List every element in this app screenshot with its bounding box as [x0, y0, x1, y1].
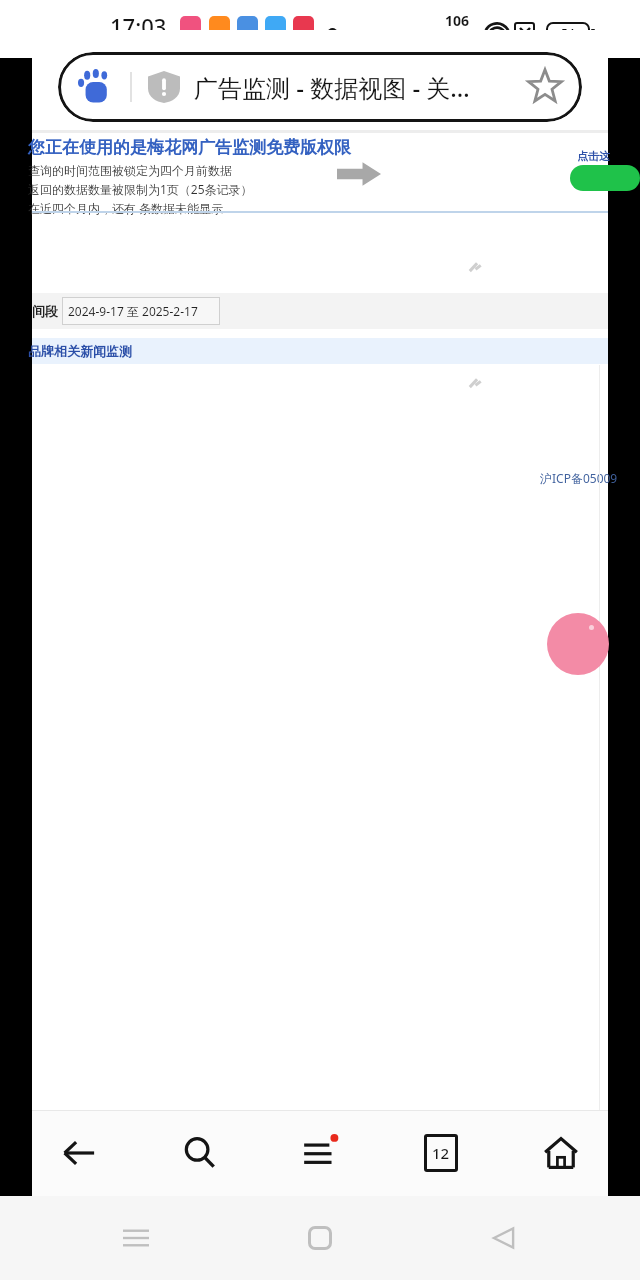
- staticText: 2024-9-17 至 2025-2-17: [68, 303, 198, 319]
- button[interactable]: 2024-9-17 至 2025-2-17: [62, 297, 220, 325]
- button[interactable]: Tabs: [412, 1124, 470, 1182]
- staticText: 在近四个月内，还有 条数据未能显示: [28, 200, 224, 216]
- button[interactable]: [570, 165, 640, 191]
- button[interactable]: Back: [50, 1124, 108, 1182]
- staticText: 54: [561, 25, 575, 41]
- button[interactable]: 广告监测 - 数据视图 - 关…: [58, 52, 582, 122]
- staticText: 17:03: [110, 11, 167, 41]
- button[interactable]: Bookmark: [522, 64, 568, 110]
- staticText: 广告监测 - 数据视图 - 关…: [194, 71, 522, 104]
- button[interactable]: Search: [171, 1124, 229, 1182]
- staticText: 返回的数据数量被限制为1页（25条记录）: [28, 181, 253, 197]
- staticText: 沪ICP备05009: [540, 470, 618, 486]
- button[interactable]: Home: [294, 1212, 346, 1264]
- staticText: 106: [445, 11, 470, 30]
- staticText: 间段: [32, 303, 58, 319]
- staticText: 品牌相关新闻监测: [28, 343, 132, 359]
- staticText: 12: [432, 1143, 450, 1163]
- staticText: 您正在使用的是梅花网广告监测免费版权限: [28, 137, 351, 158]
- button[interactable]: Menu: [291, 1124, 349, 1182]
- button[interactable]: Home: [532, 1124, 590, 1182]
- button[interactable]: Recents: [110, 1212, 162, 1264]
- button[interactable]: Back: [478, 1212, 530, 1264]
- button[interactable]: Floating assistant: [547, 613, 609, 675]
- staticText: 查询的时间范围被锁定为四个月前数据: [28, 163, 232, 178]
- staticText: 点击这: [577, 149, 610, 163]
